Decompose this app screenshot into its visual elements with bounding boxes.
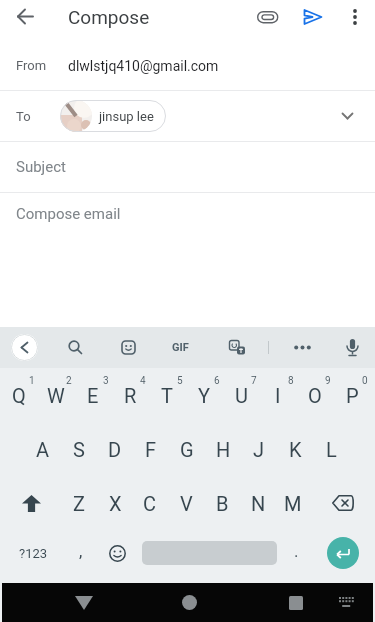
button[interactable] bbox=[282, 327, 322, 368]
staticText: M bbox=[284, 492, 302, 515]
button[interactable]: Y bbox=[186, 368, 222, 422]
button[interactable] bbox=[0, 0, 50, 33]
button[interactable]: Subject bbox=[0, 142, 375, 192]
staticText: N bbox=[251, 492, 266, 515]
button[interactable]: J bbox=[241, 422, 277, 476]
staticText: 3 bbox=[103, 375, 109, 387]
staticText: H bbox=[216, 438, 231, 461]
button[interactable]: I bbox=[260, 368, 296, 422]
staticText: Compose email bbox=[16, 205, 121, 223]
button[interactable] bbox=[8, 476, 54, 530]
staticText: V bbox=[180, 492, 193, 515]
button[interactable] bbox=[335, 0, 375, 33]
button[interactable]: H bbox=[205, 422, 241, 476]
button[interactable]: From bbox=[0, 41, 375, 90]
staticText: 5 bbox=[177, 375, 183, 387]
staticText: 6 bbox=[214, 375, 220, 387]
staticText: S bbox=[73, 438, 85, 461]
staticText: Compose bbox=[68, 6, 150, 28]
staticText: R bbox=[124, 384, 137, 407]
button[interactable]: A bbox=[25, 422, 61, 476]
button[interactable] bbox=[276, 583, 316, 622]
button[interactable] bbox=[64, 583, 104, 622]
staticText: 2 bbox=[66, 375, 72, 387]
staticText: P bbox=[346, 384, 359, 407]
button[interactable]: E bbox=[75, 368, 111, 422]
button[interactable] bbox=[101, 527, 133, 580]
staticText: G bbox=[180, 438, 194, 461]
button[interactable]: V bbox=[168, 476, 204, 530]
button[interactable]: Compose email bbox=[0, 193, 375, 327]
button[interactable]: jinsup lee bbox=[60, 100, 166, 132]
button[interactable]: GIF bbox=[158, 327, 202, 368]
staticText: Z bbox=[73, 492, 85, 515]
staticText: Subject bbox=[16, 158, 66, 176]
button[interactable] bbox=[55, 327, 95, 368]
staticText: From bbox=[16, 58, 47, 73]
button[interactable] bbox=[290, 0, 335, 33]
button[interactable]: Q bbox=[1, 368, 37, 422]
button[interactable]: O bbox=[297, 368, 333, 422]
staticText: Y bbox=[198, 384, 211, 407]
button[interactable]: K bbox=[277, 422, 313, 476]
button[interactable]: G bbox=[169, 422, 205, 476]
staticText: 7 bbox=[251, 375, 257, 387]
staticText: W bbox=[47, 384, 65, 407]
button[interactable]: P bbox=[334, 368, 370, 422]
button[interactable]: T bbox=[149, 368, 185, 422]
button[interactable]: X bbox=[97, 476, 133, 530]
staticText: A bbox=[36, 438, 50, 461]
staticText: U bbox=[235, 384, 248, 407]
staticText: 1 bbox=[29, 375, 35, 387]
staticText: K bbox=[289, 438, 302, 461]
staticText: T bbox=[161, 384, 173, 407]
button[interactable] bbox=[108, 327, 148, 368]
staticText: X bbox=[109, 492, 122, 515]
staticText: J bbox=[253, 438, 265, 461]
button[interactable]: D bbox=[97, 422, 133, 476]
button[interactable]: R bbox=[112, 368, 148, 422]
button[interactable]: ?123 bbox=[6, 527, 60, 580]
button[interactable]: S bbox=[61, 422, 97, 476]
staticText: 0 bbox=[362, 375, 368, 387]
staticText: . bbox=[294, 541, 299, 561]
staticText: D bbox=[108, 438, 122, 461]
button[interactable] bbox=[169, 583, 209, 622]
staticText: GIF bbox=[172, 341, 189, 354]
button[interactable]: C bbox=[132, 476, 168, 530]
staticText: L bbox=[326, 438, 337, 461]
staticText: B bbox=[216, 492, 229, 515]
button[interactable] bbox=[11, 334, 38, 361]
button[interactable]: W bbox=[38, 368, 74, 422]
staticText: dlwlstjq410@gmail.com bbox=[68, 58, 219, 74]
button[interactable]: F bbox=[133, 422, 169, 476]
button[interactable]: L bbox=[313, 422, 349, 476]
staticText: 9 bbox=[325, 375, 331, 387]
button[interactable] bbox=[327, 537, 359, 569]
button[interactable] bbox=[319, 96, 375, 136]
staticText: To bbox=[16, 109, 31, 124]
button[interactable] bbox=[333, 583, 361, 622]
button[interactable]: B bbox=[204, 476, 240, 530]
button[interactable]: N bbox=[240, 476, 276, 530]
button[interactable] bbox=[319, 476, 367, 530]
button[interactable] bbox=[246, 0, 290, 33]
button[interactable] bbox=[332, 327, 372, 368]
staticText: 8 bbox=[288, 375, 294, 387]
staticText: Q bbox=[12, 384, 26, 407]
staticText: jinsup lee bbox=[99, 109, 154, 124]
staticText: O bbox=[308, 384, 322, 407]
button[interactable]: . bbox=[282, 527, 310, 580]
staticText: E bbox=[87, 384, 99, 407]
staticText: C bbox=[143, 492, 157, 515]
button[interactable]: M bbox=[275, 476, 311, 530]
staticText: , bbox=[79, 541, 83, 561]
button[interactable]: Z bbox=[61, 476, 97, 530]
staticText: 4 bbox=[140, 375, 146, 387]
button[interactable]: U bbox=[223, 368, 259, 422]
button[interactable] bbox=[217, 327, 257, 368]
staticText: F bbox=[145, 438, 157, 461]
button[interactable]: , bbox=[67, 527, 95, 580]
staticText: I bbox=[275, 384, 281, 407]
